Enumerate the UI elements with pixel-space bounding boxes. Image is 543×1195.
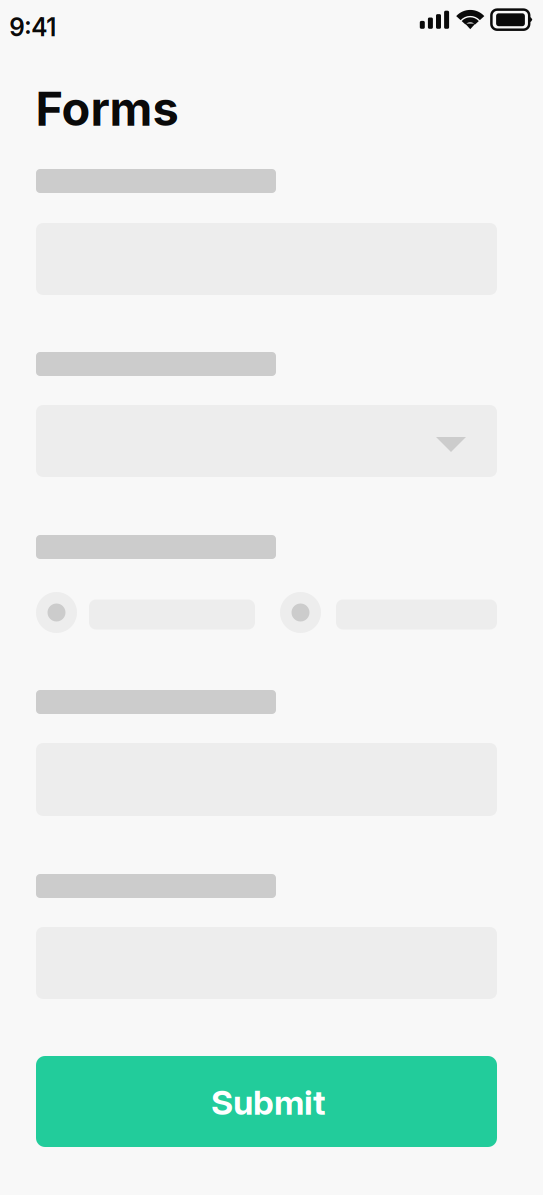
- button[interactable]: Option two: [280, 592, 497, 633]
- button[interactable]: Submit: [36, 1056, 497, 1147]
- staticText: Submit: [211, 1082, 326, 1123]
- button[interactable]: Option one: [36, 592, 255, 633]
- staticText: Forms: [35, 80, 178, 137]
- staticText: 9:41: [9, 13, 56, 42]
